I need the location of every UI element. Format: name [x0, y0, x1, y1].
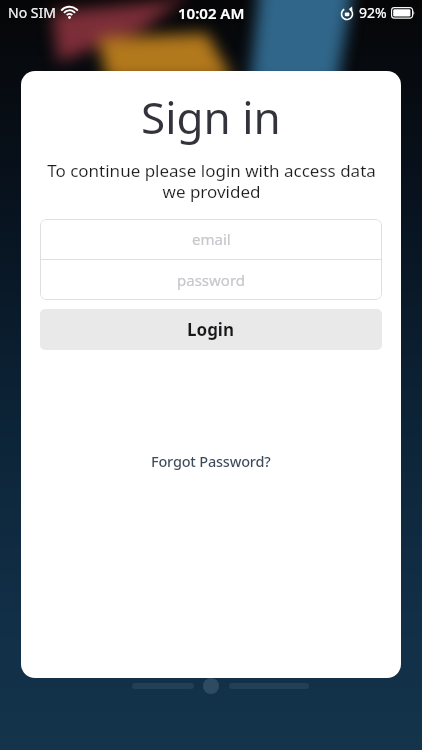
staticText: Login [187, 318, 235, 341]
staticText: Sign in [141, 87, 281, 147]
button[interactable]: Forgot Password? [151, 451, 271, 471]
staticText: To continue please login with access dat… [47, 159, 376, 203]
staticText: 92% [359, 3, 387, 22]
button[interactable]: password [40, 260, 382, 300]
staticText: No SIM [8, 3, 56, 22]
staticText: 10:02 AM [178, 3, 245, 23]
staticText: password [177, 270, 245, 290]
staticText: email [192, 229, 231, 249]
staticText: Forgot Password? [151, 451, 271, 471]
button[interactable]: email [40, 219, 382, 259]
button[interactable]: Login [40, 309, 382, 350]
